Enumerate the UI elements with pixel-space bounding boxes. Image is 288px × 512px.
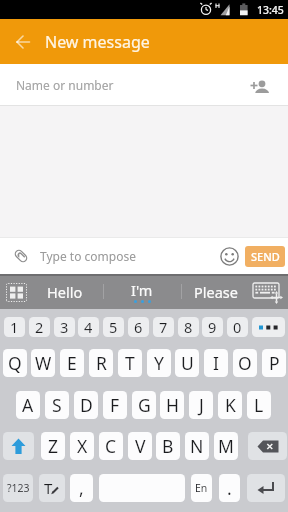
staticText: Y: [154, 351, 164, 375]
staticText: B: [162, 434, 174, 458]
staticText: 3: [60, 317, 69, 337]
button[interactable]: F: [103, 391, 127, 419]
button[interactable]: Type to compose: [0, 238, 288, 274]
button[interactable]: [0, 19, 45, 64]
button[interactable]: T: [118, 349, 142, 377]
staticText: En: [195, 481, 208, 495]
staticText: H: [166, 393, 179, 417]
staticText: Please: [194, 282, 238, 302]
button[interactable]: N: [185, 432, 209, 460]
staticText: A: [22, 393, 34, 417]
button[interactable]: Q: [3, 349, 27, 377]
button[interactable]: 7: [153, 317, 174, 337]
staticText: S: [52, 393, 62, 417]
button[interactable]: H: [160, 391, 184, 419]
staticText: E: [67, 351, 77, 375]
staticText: 13:45: [257, 3, 284, 17]
button[interactable]: ,: [70, 474, 93, 502]
button[interactable]: V: [128, 432, 152, 460]
button[interactable]: S: [45, 391, 69, 419]
staticText: New message: [45, 31, 150, 53]
button[interactable]: K: [218, 391, 242, 419]
button[interactable]: G: [132, 391, 156, 419]
button[interactable]: [217, 244, 241, 268]
button[interactable]: R: [89, 349, 113, 377]
button[interactable]: A: [16, 391, 40, 419]
button[interactable]: P: [262, 349, 286, 377]
staticText: J: [199, 393, 204, 417]
button[interactable]: [99, 474, 185, 502]
staticText: V: [135, 434, 146, 458]
button[interactable]: 9: [202, 317, 223, 337]
button[interactable]: [248, 432, 287, 460]
staticText: ?123: [7, 481, 30, 495]
button[interactable]: Hello: [31, 274, 99, 309]
staticText: K: [225, 393, 236, 417]
button[interactable]: J: [189, 391, 213, 419]
staticText: M: [218, 434, 234, 458]
button[interactable]: En: [191, 474, 212, 502]
button[interactable]: [247, 474, 285, 502]
staticText: 9: [208, 317, 217, 337]
staticText: U: [181, 351, 194, 375]
button[interactable]: 2: [29, 317, 50, 337]
button[interactable]: [252, 317, 285, 337]
staticText: 0: [233, 317, 242, 337]
staticText: F: [110, 393, 120, 417]
button[interactable]: U: [175, 349, 199, 377]
staticText: T: [125, 351, 135, 375]
button[interactable]: .: [219, 474, 240, 502]
staticText: D: [80, 393, 93, 417]
button[interactable]: X: [70, 432, 94, 460]
button[interactable]: Z: [41, 432, 65, 460]
button[interactable]: B: [156, 432, 180, 460]
staticText: Q: [8, 351, 22, 375]
staticText: T: [44, 478, 53, 498]
staticText: L: [254, 393, 264, 417]
staticText: X: [77, 434, 88, 458]
staticText: 1: [10, 317, 19, 337]
staticText: Type to compose: [40, 248, 136, 264]
staticText: 7: [159, 317, 168, 337]
button[interactable]: 3: [54, 317, 75, 337]
staticText: Name or number: [16, 77, 114, 93]
button[interactable]: [3, 432, 34, 460]
button[interactable]: 4: [78, 317, 99, 337]
button[interactable]: 5: [103, 317, 124, 337]
button[interactable]: O: [233, 349, 257, 377]
button[interactable]: ?123: [3, 474, 33, 502]
staticText: Hello: [47, 282, 83, 302]
button[interactable]: D: [74, 391, 98, 419]
staticText: Z: [48, 434, 59, 458]
staticText: P: [269, 351, 280, 375]
staticText: 8: [184, 317, 193, 337]
button[interactable]: I: [204, 349, 228, 377]
button[interactable]: C: [99, 432, 123, 460]
button[interactable]: [246, 71, 274, 99]
staticText: 5: [109, 317, 118, 337]
staticText: R: [96, 351, 107, 375]
staticText: 6: [134, 317, 143, 337]
button[interactable]: L: [247, 391, 271, 419]
staticText: I'm: [131, 280, 153, 300]
button[interactable]: M: [214, 432, 238, 460]
button[interactable]: T: [39, 474, 65, 502]
button[interactable]: SEND: [245, 246, 285, 267]
button[interactable]: [4, 281, 28, 303]
staticText: I: [213, 351, 219, 375]
staticText: .: [227, 476, 232, 500]
button[interactable]: Y: [147, 349, 171, 377]
button[interactable]: W: [31, 349, 55, 377]
button[interactable]: Please: [182, 274, 250, 309]
staticText: N: [190, 434, 204, 458]
button[interactable]: 1: [4, 317, 25, 337]
button[interactable]: Name or number: [0, 64, 288, 105]
button[interactable]: 6: [128, 317, 149, 337]
button[interactable]: 0: [227, 317, 248, 337]
button[interactable]: 8: [178, 317, 199, 337]
button[interactable]: [251, 280, 285, 305]
staticText: 2: [35, 317, 44, 337]
button[interactable]: I'm: [104, 274, 180, 309]
button[interactable]: E: [60, 349, 84, 377]
staticText: C: [105, 434, 117, 458]
